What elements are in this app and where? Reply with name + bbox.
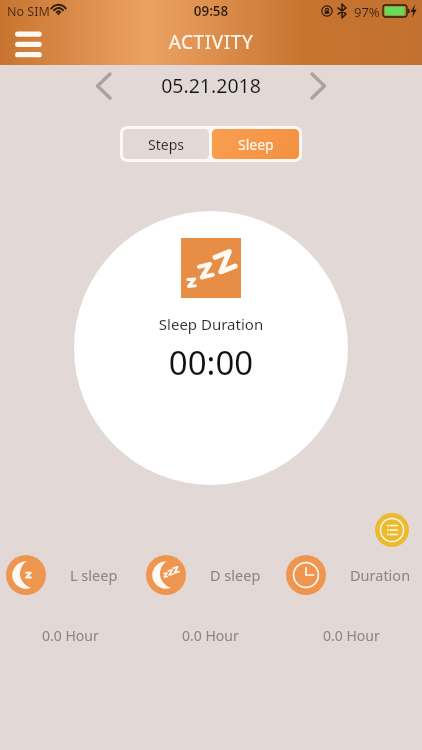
staticText: Sleep Duration	[74, 314, 348, 334]
staticText: 0.0 Hour	[42, 626, 99, 645]
button[interactable]: Menu	[8, 26, 48, 60]
button[interactable]: Next day	[302, 70, 334, 102]
staticText: Sleep	[238, 135, 274, 154]
staticText: Duration	[350, 565, 411, 585]
staticText: 09:58	[0, 2, 422, 20]
button[interactable]: Duration	[286, 555, 411, 595]
staticText: D sleep	[210, 565, 261, 585]
button[interactable]: Steps	[123, 129, 209, 159]
button[interactable]: Previous day	[88, 70, 120, 102]
staticText: 00:00	[74, 340, 348, 385]
staticText: ACTIVITY	[0, 29, 422, 55]
staticText: L sleep	[70, 565, 118, 585]
staticText: 0.0 Hour	[182, 626, 239, 645]
staticText: 97%	[354, 3, 380, 21]
staticText: 0.0 Hour	[323, 626, 380, 645]
button[interactable]: Sleep	[212, 129, 299, 159]
button[interactable]: L sleep	[6, 555, 118, 595]
staticText: Steps	[148, 135, 184, 154]
button[interactable]: D sleep	[146, 555, 261, 595]
staticText: 05.21.2018	[0, 72, 422, 99]
staticText: No SIM	[7, 3, 50, 20]
button[interactable]: List	[375, 513, 409, 547]
